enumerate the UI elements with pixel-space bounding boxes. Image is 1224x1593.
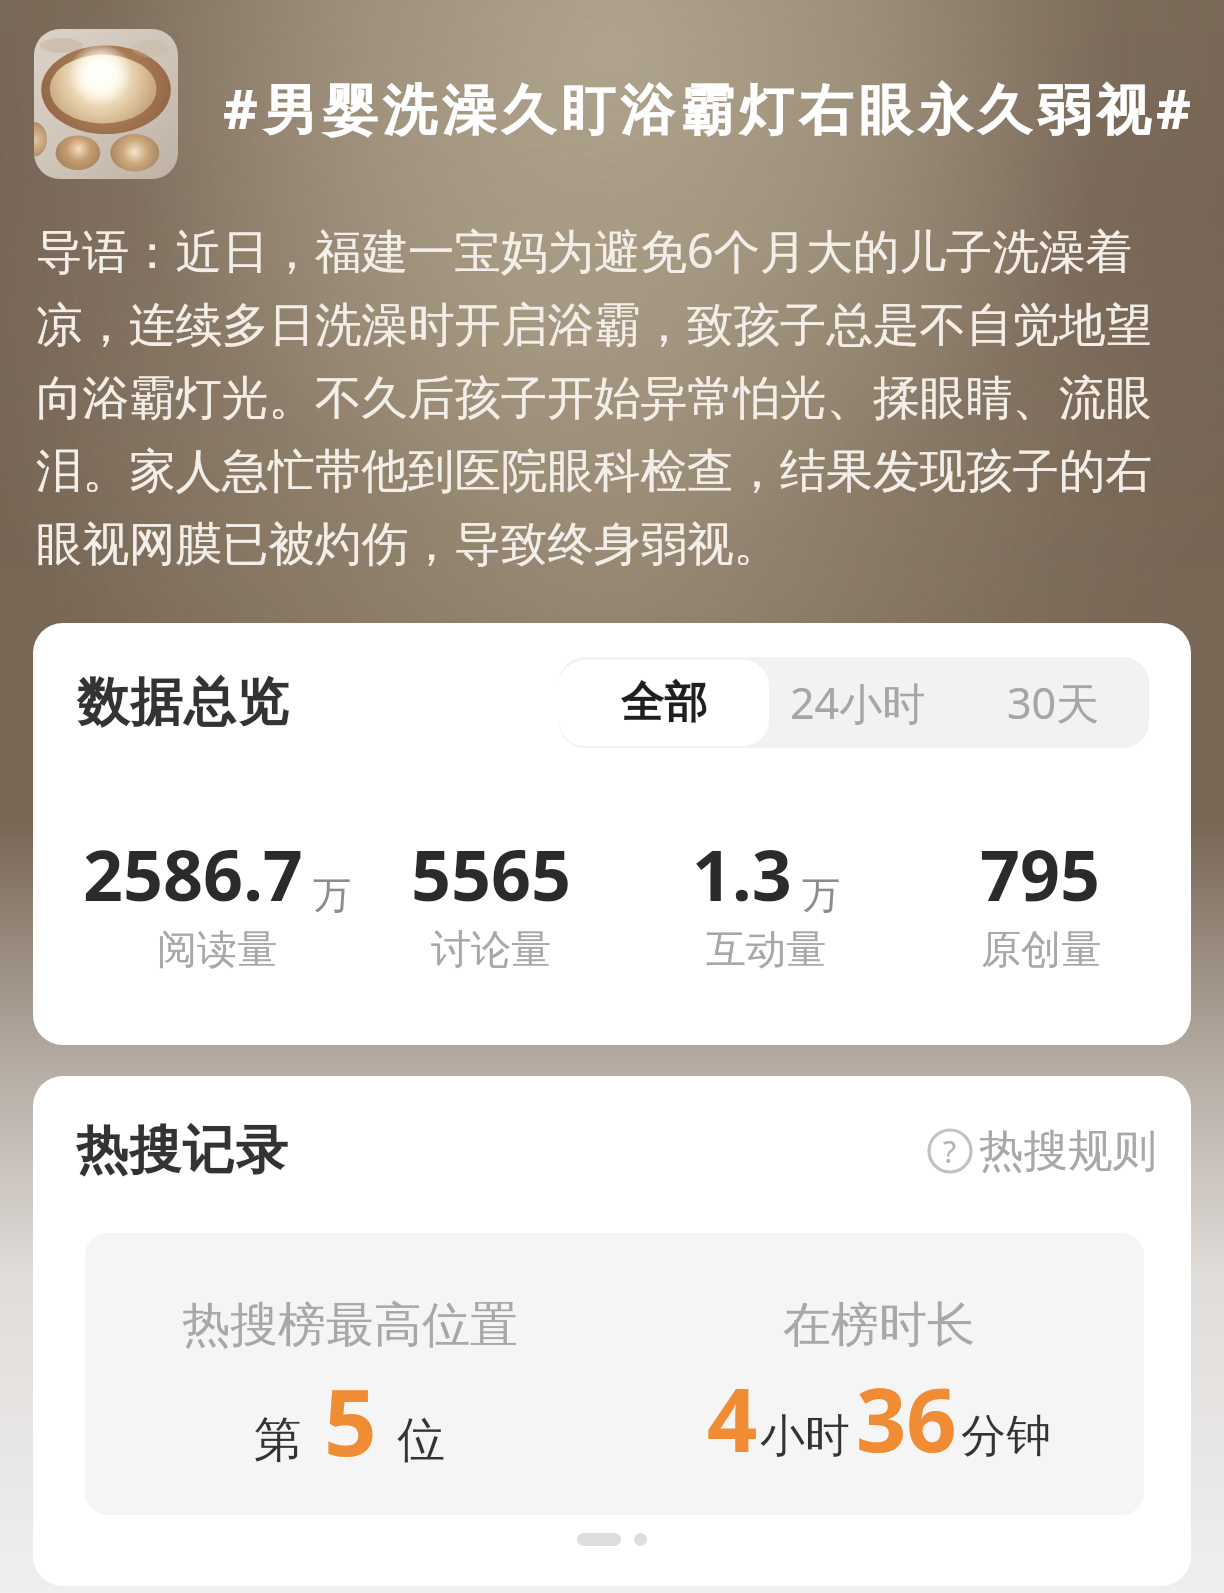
staticText: 36 (856, 1358, 957, 1478)
staticText: 热搜规则 (979, 1123, 1157, 1179)
button[interactable]: 全部 (559, 660, 769, 746)
staticText: 全部 (621, 676, 707, 730)
staticText: 24小时 (790, 673, 926, 732)
staticText: 导语：近日，福建一宝妈为避免6个月大的儿子洗澡着 凉，连续多日洗澡时开启浴霸，致… (36, 218, 1200, 573)
staticText: 数据总览 (77, 670, 290, 736)
staticText: 原创量 (981, 924, 1101, 974)
staticText: 热搜榜最高位置 (182, 1295, 518, 1355)
staticText: 1.3 (692, 826, 792, 921)
button[interactable]: #男婴洗澡久盯浴霸灯右眼永久弱视# (223, 71, 1198, 145)
button[interactable]: 1.3 (628, 826, 903, 971)
staticText: 5 (324, 1358, 377, 1483)
staticText: 万 (802, 871, 840, 919)
staticText: 讨论量 (431, 924, 551, 974)
staticText: 分钟 (961, 1408, 1051, 1465)
button[interactable]: 话题配图 (34, 29, 178, 179)
staticText: 在榜时长 (783, 1295, 975, 1355)
other: 热搜规则说明 (927, 1128, 973, 1174)
button[interactable]: 30天 (966, 657, 1149, 748)
staticText: 位 (397, 1410, 445, 1470)
staticText: 互动量 (706, 924, 826, 974)
staticText: ? (943, 1131, 957, 1172)
button[interactable]: 热搜规则说明 (916, 1123, 1157, 1179)
staticText: 30天 (1007, 673, 1100, 732)
staticText: 热搜记录 (76, 1118, 289, 1184)
staticText: 4 (707, 1358, 758, 1478)
button[interactable]: 2586.7 (80, 826, 354, 971)
staticText: 小时 (760, 1408, 850, 1465)
staticText: 第 (254, 1410, 302, 1470)
staticText: 阅读量 (157, 924, 277, 974)
staticText: 2586.7 (83, 826, 303, 921)
staticText: 万 (313, 871, 351, 919)
button[interactable]: 5565 (354, 826, 628, 971)
staticText: 795 (980, 826, 1101, 921)
staticText: 5565 (411, 826, 572, 921)
button[interactable]: 24小时 (769, 657, 966, 748)
button[interactable]: 795 (903, 826, 1178, 971)
